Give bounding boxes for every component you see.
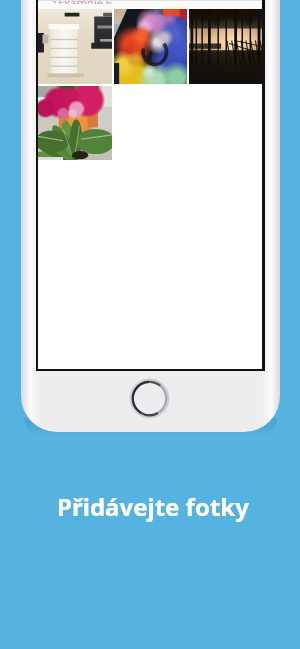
staticText: Example 6 xyxy=(58,0,113,4)
button[interactable] xyxy=(189,9,262,84)
button[interactable] xyxy=(38,9,112,84)
button[interactable]: Home button xyxy=(131,380,168,417)
button[interactable] xyxy=(38,86,112,160)
staticText: Přidávejte fotky xyxy=(57,490,249,523)
button[interactable] xyxy=(114,9,187,84)
